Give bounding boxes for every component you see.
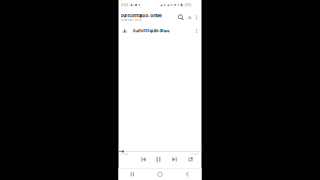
staticText: 0:00: [121, 153, 128, 156]
staticText: 29%: [184, 3, 191, 7]
button[interactable]: Previous track: [136, 155, 150, 163]
button[interactable]: Pause: [150, 155, 166, 163]
button[interactable]: Repeat: [182, 155, 198, 163]
button[interactable]: Search: [176, 11, 185, 23]
button[interactable]: More options: [193, 11, 200, 23]
staticText: Unknown Artist: [120, 18, 141, 22]
staticText: OurFUFFFqkX0-0Ftwe: [120, 13, 161, 18]
button[interactable]: Recents: [118, 170, 146, 178]
button[interactable]: Next track: [166, 155, 182, 163]
button[interactable]: Home: [146, 170, 174, 178]
button[interactable]: Equalizer: [185, 11, 193, 23]
button[interactable]: Back: [174, 170, 201, 178]
button[interactable]: OurFUFFFqkX0-0Ftwe: [118, 25, 201, 37]
staticText: 2:45: [191, 153, 198, 156]
staticText: 4:03: [121, 3, 128, 7]
staticText: OurFUFFFqkX0-0Ftwe: [132, 29, 169, 33]
